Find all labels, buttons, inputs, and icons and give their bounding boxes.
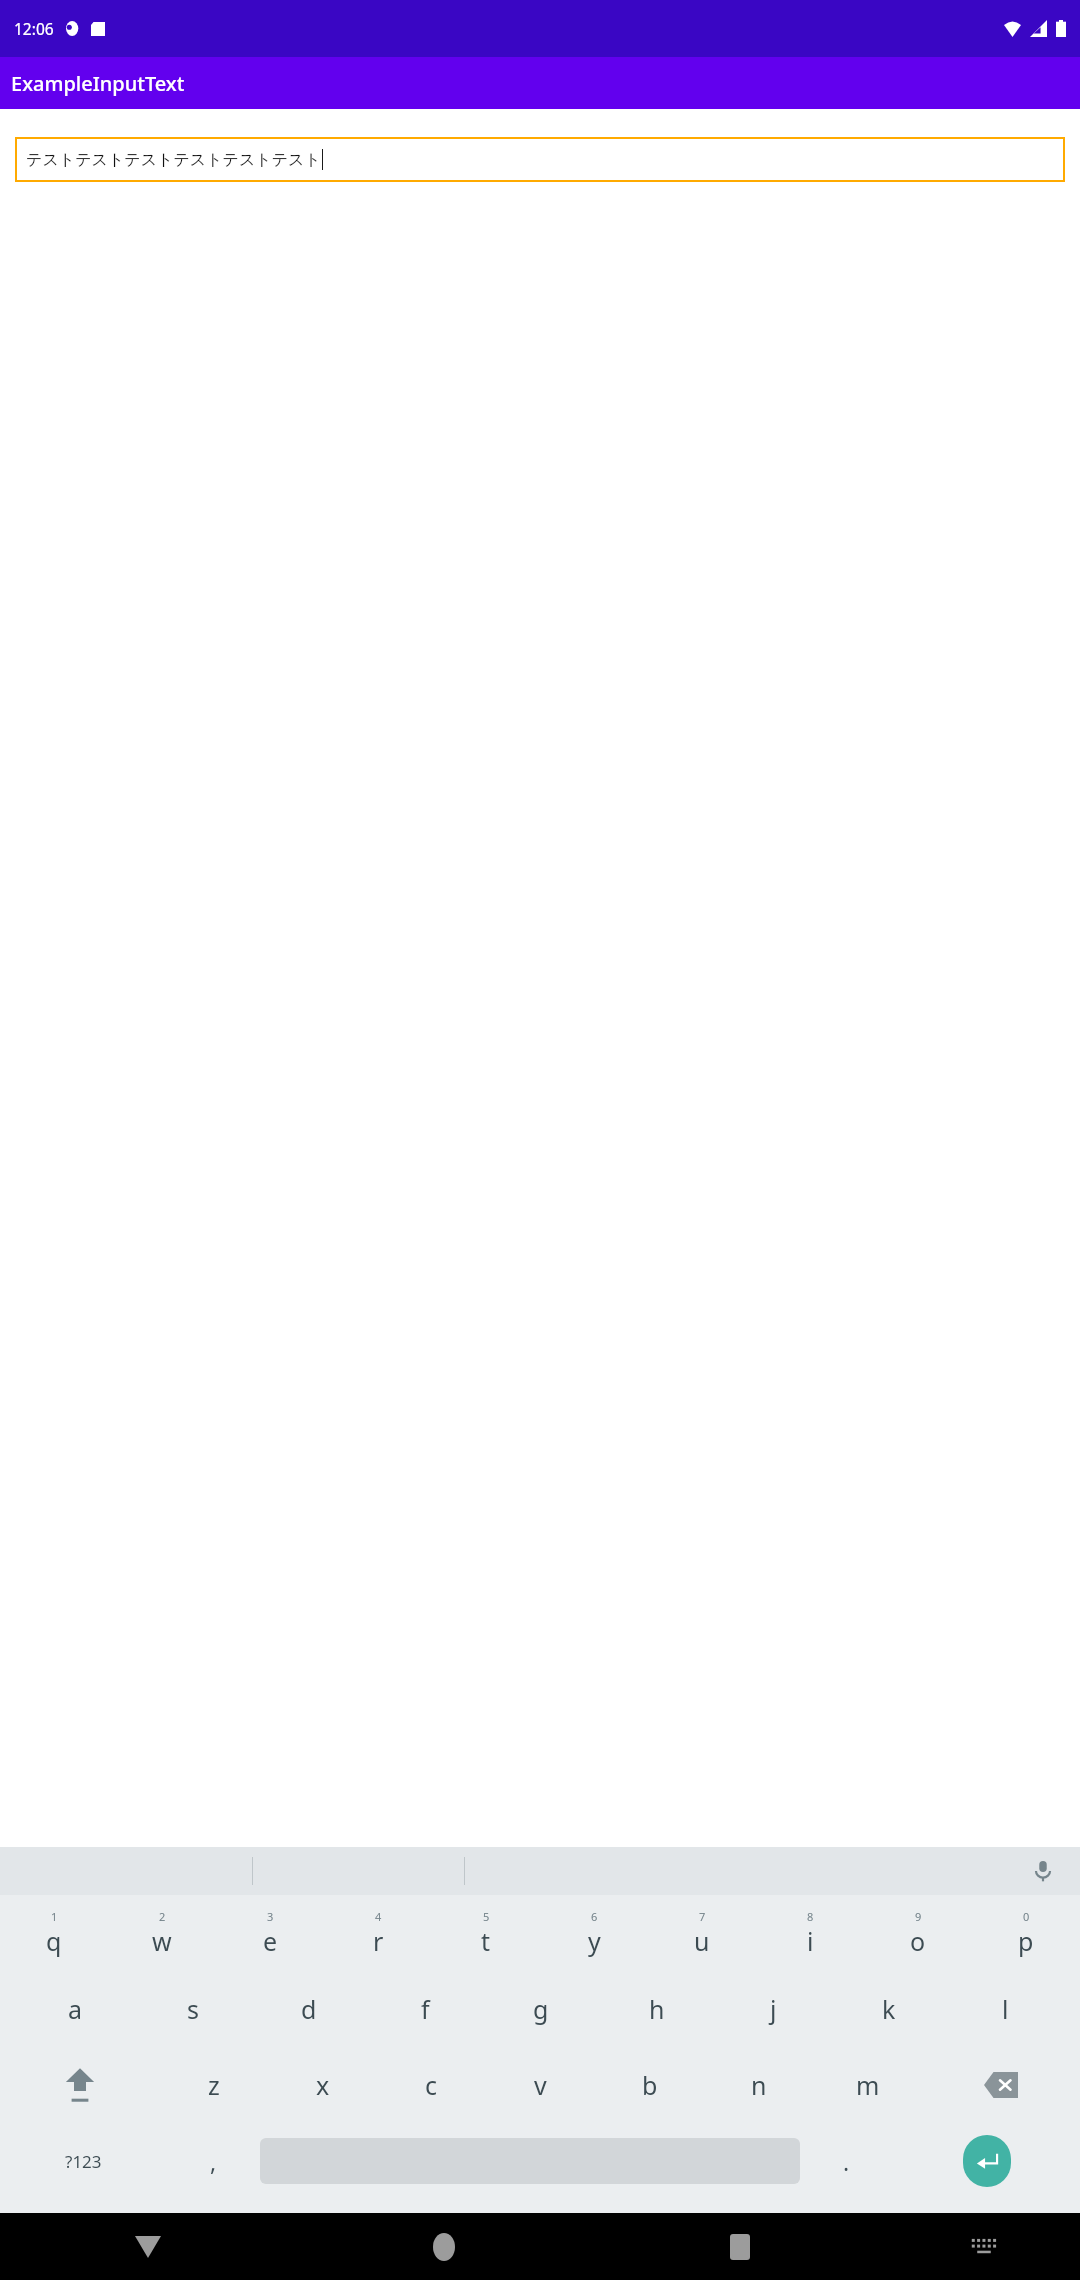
staticText: テストテストテストテストテストテスト: [26, 150, 321, 170]
button[interactable]: a: [17, 1971, 134, 2047]
staticText: k: [882, 1992, 896, 2026]
button[interactable]: Home: [296, 2213, 592, 2280]
button[interactable]: 5: [432, 1895, 540, 1971]
staticText: d: [301, 1992, 317, 2026]
button[interactable]: 6: [540, 1895, 648, 1971]
button[interactable]: c: [377, 2047, 486, 2123]
button[interactable]: x: [268, 2047, 377, 2123]
staticText: h: [649, 1992, 665, 2026]
button[interactable]: ,: [167, 2123, 260, 2199]
staticText: 5: [483, 1909, 490, 1924]
staticText: j: [770, 1992, 777, 2026]
staticText: l: [1002, 1992, 1009, 2026]
staticText: t: [481, 1924, 491, 1958]
staticText: u: [694, 1924, 710, 1958]
button[interactable]: b: [595, 2047, 704, 2123]
button[interactable]: Recents: [592, 2213, 888, 2280]
staticText: o: [910, 1924, 926, 1958]
staticText: n: [751, 2068, 767, 2102]
button[interactable]: Backspace: [922, 2047, 1080, 2123]
button[interactable]: 3: [216, 1895, 324, 1971]
button[interactable]: Shift: [0, 2047, 159, 2123]
button[interactable]: .: [800, 2123, 893, 2199]
staticText: ?123: [65, 2150, 102, 2173]
staticText: .: [843, 2146, 850, 2177]
staticText: s: [187, 1992, 199, 2026]
button[interactable]: 0: [972, 1895, 1080, 1971]
staticText: x: [316, 2068, 330, 2102]
button[interactable]: 2: [108, 1895, 216, 1971]
button[interactable]: 7: [648, 1895, 756, 1971]
staticText: 7: [699, 1909, 706, 1924]
staticText: 12:06: [14, 18, 54, 39]
button[interactable]: v: [486, 2047, 595, 2123]
staticText: q: [46, 1924, 62, 1958]
staticText: m: [856, 2068, 880, 2102]
staticText: 0: [1023, 1909, 1030, 1924]
staticText: p: [1018, 1924, 1034, 1958]
button[interactable]: j: [715, 1971, 831, 2047]
staticText: 9: [915, 1909, 922, 1924]
button[interactable]: 8: [756, 1895, 864, 1971]
staticText: g: [533, 1992, 549, 2026]
button[interactable]: Hide keyboard: [0, 2213, 296, 2280]
staticText: z: [208, 2068, 220, 2102]
button[interactable]: k: [831, 1971, 947, 2047]
staticText: 3: [267, 1909, 274, 1924]
staticText: 6: [591, 1909, 598, 1924]
button[interactable]: Switch keyboard: [888, 2213, 1080, 2280]
button[interactable]: z: [159, 2047, 268, 2123]
staticText: 4: [375, 1909, 382, 1924]
staticText: ,: [210, 2146, 217, 2177]
button[interactable]: Voice input: [1026, 1854, 1060, 1888]
staticText: v: [534, 2068, 547, 2102]
staticText: 8: [807, 1909, 814, 1924]
staticText: e: [263, 1924, 278, 1958]
staticText: b: [642, 2068, 658, 2102]
staticText: c: [425, 2068, 438, 2102]
button[interactable]: テストテストテストテストテストテスト: [15, 137, 1065, 182]
staticText: a: [68, 1992, 83, 2026]
staticText: y: [588, 1924, 601, 1958]
staticText: i: [807, 1924, 814, 1958]
button[interactable]: d: [251, 1971, 367, 2047]
button[interactable]: ?123: [0, 2123, 167, 2199]
button[interactable]: f: [367, 1971, 483, 2047]
button[interactable]: n: [704, 2047, 813, 2123]
button[interactable]: 9: [864, 1895, 972, 1971]
button[interactable]: g: [483, 1971, 599, 2047]
button[interactable]: h: [599, 1971, 715, 2047]
staticText: ExampleInputText: [11, 70, 185, 97]
button[interactable]: l: [947, 1971, 1063, 2047]
staticText: r: [373, 1924, 384, 1958]
staticText: f: [421, 1992, 430, 2026]
button[interactable]: 4: [324, 1895, 432, 1971]
button[interactable]: 1: [0, 1895, 108, 1971]
button[interactable]: Enter: [893, 2123, 1080, 2199]
button[interactable]: s: [134, 1971, 251, 2047]
button[interactable]: m: [813, 2047, 922, 2123]
staticText: w: [152, 1924, 172, 1958]
staticText: 2: [159, 1909, 166, 1924]
staticText: 1: [51, 1909, 58, 1924]
